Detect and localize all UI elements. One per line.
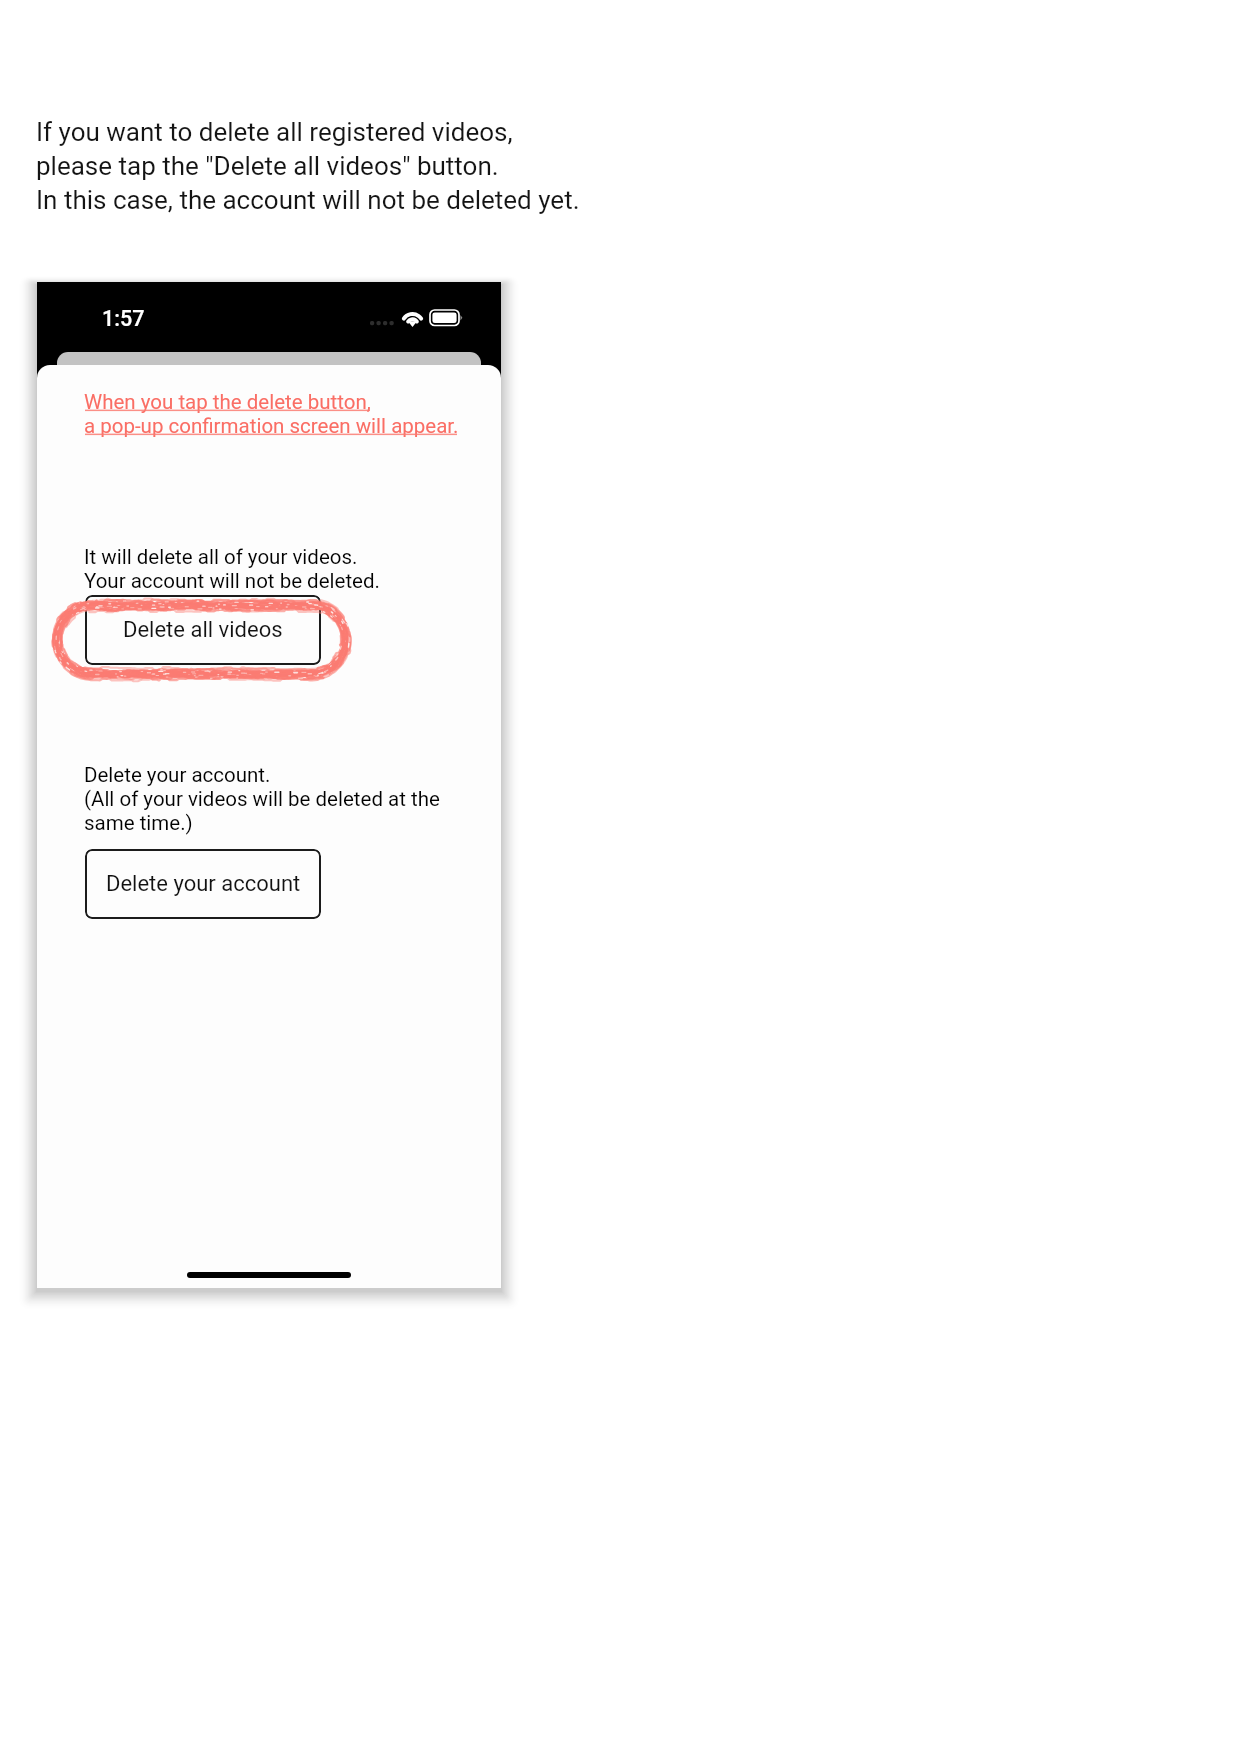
staticText: If you want to delete all registered vid… bbox=[36, 117, 580, 216]
staticText: 1:57 bbox=[102, 306, 145, 331]
button[interactable]: Delete all videos bbox=[85, 595, 321, 665]
staticText: Delete your account bbox=[106, 871, 301, 897]
staticText: Delete all videos bbox=[123, 617, 283, 643]
staticText: When you tap the delete button, a pop-up… bbox=[84, 390, 459, 438]
staticText: It will delete all of your videos. Your … bbox=[84, 545, 380, 593]
staticText: Delete your account. (All of your videos… bbox=[84, 763, 440, 835]
button[interactable]: Delete your account bbox=[85, 849, 321, 919]
